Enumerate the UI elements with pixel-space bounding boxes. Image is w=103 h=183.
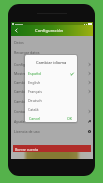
button[interactable]: Licencia de uso (11, 126, 93, 136)
button[interactable]: Español (25, 69, 77, 78)
staticText: Cancel (29, 116, 41, 121)
button[interactable]: Contactar soporte (11, 106, 93, 116)
button[interactable]: Français (25, 87, 77, 96)
button[interactable]: OK (66, 115, 74, 122)
staticText: Cambiar moneda (14, 89, 88, 94)
button[interactable]: Cancel (28, 115, 42, 122)
staticText: Contactar soporte (14, 109, 88, 114)
staticText: Cambiar idioma (14, 80, 88, 85)
staticText: Deutsch (28, 98, 74, 103)
staticText: OK (67, 116, 73, 121)
button[interactable]: Configurar cuenta (11, 60, 93, 69)
button[interactable]: Mostrar notificaciones (11, 69, 93, 78)
staticText: Cambiar idioma (36, 60, 67, 65)
button[interactable]: Recargar datos (11, 48, 93, 57)
staticText: Borrar cuenta (15, 147, 39, 152)
button[interactable]: Catalá (25, 105, 77, 114)
staticText: Mostrar notificaciones (14, 71, 88, 76)
staticText: Datos (14, 40, 24, 45)
button[interactable]: Cambiar idioma (11, 78, 93, 87)
staticText: English (28, 80, 74, 85)
button[interactable]: Cambiar moneda (11, 87, 93, 96)
staticText: Configurar cuenta (14, 62, 88, 67)
staticText: Cambiar tema (14, 99, 91, 104)
button[interactable]: Ayuda (11, 116, 93, 126)
staticText: Français (28, 89, 74, 94)
button[interactable]: Deutsch (25, 96, 77, 105)
button[interactable]: Back (12, 26, 21, 35)
button[interactable]: Cambiar tema (11, 96, 93, 106)
staticText: Configuración (35, 28, 64, 34)
button[interactable]: Borrar cuenta (13, 145, 91, 153)
staticText: Español (28, 71, 70, 76)
staticText: Ayuda (14, 119, 88, 124)
staticText: Recargar datos (14, 50, 91, 55)
button[interactable]: English (25, 78, 77, 87)
staticText: Catalá (28, 107, 74, 112)
staticText: Licencia de uso (14, 129, 88, 134)
